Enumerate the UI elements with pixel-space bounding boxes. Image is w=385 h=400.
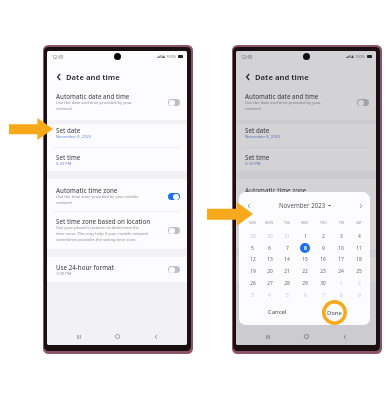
button[interactable]: Home bbox=[300, 330, 313, 343]
button[interactable] bbox=[236, 86, 376, 120]
button[interactable] bbox=[47, 86, 187, 120]
button[interactable]: Previous month bbox=[243, 200, 254, 211]
button[interactable]: 30 bbox=[314, 277, 332, 289]
button[interactable] bbox=[236, 257, 376, 282]
staticText: 27 bbox=[267, 280, 273, 287]
staticText: 7 bbox=[322, 292, 325, 299]
button[interactable]: 6 bbox=[296, 289, 314, 301]
button[interactable]: Recents bbox=[261, 330, 274, 343]
staticText: 2 bbox=[358, 280, 361, 287]
button[interactable]: November 2023 bbox=[279, 201, 331, 209]
button[interactable]: 21 bbox=[278, 265, 296, 277]
staticText: 18 bbox=[356, 256, 362, 263]
staticText: 31 bbox=[284, 233, 290, 240]
staticText: 8 bbox=[340, 292, 343, 299]
button[interactable]: 24 bbox=[332, 265, 350, 277]
button[interactable]: 7 bbox=[278, 242, 296, 254]
staticText: Use the time zone provided by your mobil… bbox=[56, 194, 139, 200]
staticText: 1 bbox=[304, 233, 307, 240]
button[interactable]: Toggle off bbox=[168, 99, 180, 106]
button[interactable]: 31 bbox=[278, 230, 296, 242]
button[interactable]: 23 bbox=[314, 265, 332, 277]
button[interactable]: 29 bbox=[296, 277, 314, 289]
button[interactable]: 22 bbox=[296, 265, 314, 277]
button[interactable]: 18 bbox=[350, 253, 368, 265]
button[interactable]: 4 bbox=[261, 289, 278, 301]
button[interactable]: 2 bbox=[314, 230, 332, 242]
button[interactable] bbox=[47, 124, 187, 171]
button[interactable]: 27 bbox=[261, 277, 278, 289]
button[interactable]: 8 bbox=[332, 289, 350, 301]
button[interactable] bbox=[47, 179, 187, 249]
staticText: 1 bbox=[340, 280, 343, 287]
staticText: 19 bbox=[250, 268, 256, 275]
button[interactable]: Done bbox=[322, 300, 347, 325]
button[interactable]: 2 bbox=[350, 277, 368, 289]
button[interactable]: 3 bbox=[244, 289, 261, 301]
button[interactable]: 16 bbox=[314, 253, 332, 265]
button[interactable] bbox=[236, 179, 376, 249]
button[interactable]: Home bbox=[111, 330, 124, 343]
button[interactable]: 8 bbox=[296, 242, 314, 254]
button[interactable]: 30 bbox=[261, 230, 278, 242]
button[interactable]: 28 bbox=[278, 277, 296, 289]
button[interactable]: 10 bbox=[332, 242, 350, 254]
button[interactable]: 20 bbox=[261, 265, 278, 277]
staticText: Use the date and time provided by your bbox=[245, 100, 321, 106]
staticText: THU bbox=[320, 220, 327, 224]
button[interactable]: 7 bbox=[314, 289, 332, 301]
staticText: 12:45 bbox=[52, 54, 64, 60]
staticText: 25 bbox=[356, 268, 362, 275]
button[interactable]: Recents bbox=[72, 330, 85, 343]
staticText: 29 bbox=[302, 280, 308, 287]
button[interactable]: Next month bbox=[355, 200, 366, 211]
button[interactable]: 15 bbox=[296, 253, 314, 265]
button[interactable]: 13 bbox=[261, 253, 278, 265]
staticText: 16 bbox=[320, 256, 326, 263]
button[interactable]: 12 bbox=[244, 253, 261, 265]
staticText: network bbox=[245, 200, 261, 206]
button[interactable]: Toggle off bbox=[357, 266, 369, 273]
button[interactable]: 9 bbox=[350, 289, 368, 301]
staticText: 7 bbox=[286, 245, 289, 252]
staticText: 6 bbox=[304, 292, 307, 299]
button[interactable]: 11 bbox=[350, 242, 368, 254]
button[interactable]: 1 bbox=[332, 277, 350, 289]
button[interactable]: 3 bbox=[332, 230, 350, 242]
staticText: 17 bbox=[338, 256, 344, 263]
staticText: 14 bbox=[284, 256, 290, 263]
button[interactable]: 5 bbox=[244, 242, 261, 254]
button[interactable]: 14 bbox=[278, 253, 296, 265]
staticText: 11 bbox=[356, 245, 362, 252]
button[interactable]: 9 bbox=[314, 242, 332, 254]
button[interactable]: Back bbox=[53, 71, 64, 82]
button[interactable] bbox=[236, 124, 376, 171]
staticText: 30 bbox=[320, 280, 326, 287]
staticText: Automatic time zone bbox=[245, 186, 307, 194]
button[interactable]: Toggle off bbox=[168, 266, 180, 273]
staticText: 8 bbox=[304, 245, 307, 252]
button[interactable]: 17 bbox=[332, 253, 350, 265]
button[interactable]: 29 bbox=[244, 230, 261, 242]
button[interactable]: 5 bbox=[278, 289, 296, 301]
button[interactable]: Toggle on bbox=[357, 193, 369, 200]
button[interactable]: 6 bbox=[261, 242, 278, 254]
button[interactable]: Toggle off bbox=[357, 99, 369, 106]
button[interactable]: 26 bbox=[244, 277, 261, 289]
button[interactable] bbox=[47, 257, 187, 282]
button[interactable]: 4 bbox=[350, 230, 368, 242]
button[interactable]: 25 bbox=[350, 265, 368, 277]
button[interactable]: Back bbox=[149, 330, 162, 343]
button[interactable]: Toggle on bbox=[168, 193, 180, 200]
button[interactable]: Back bbox=[242, 71, 253, 82]
button[interactable]: 1 bbox=[296, 230, 314, 242]
button[interactable]: 19 bbox=[244, 265, 261, 277]
staticText: 15 bbox=[302, 256, 308, 263]
button[interactable]: Back bbox=[338, 330, 351, 343]
button[interactable]: Toggle off bbox=[168, 227, 180, 234]
staticText: 22 bbox=[302, 268, 308, 275]
staticText: Set time bbox=[56, 153, 81, 161]
button[interactable]: Cancel bbox=[263, 305, 291, 319]
staticText: Set time zone based on location bbox=[245, 217, 340, 225]
